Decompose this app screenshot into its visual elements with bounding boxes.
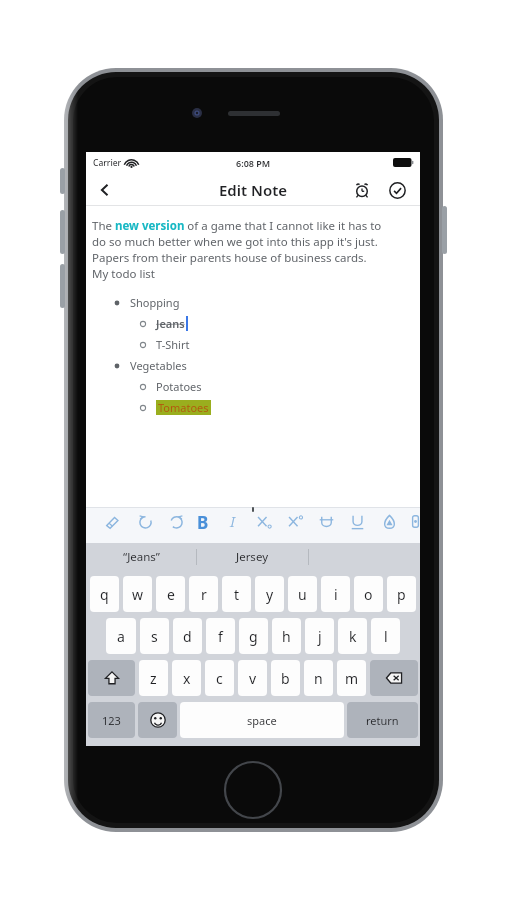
staticText: Edit Note <box>219 180 288 200</box>
button[interactable]: w <box>123 576 152 612</box>
button[interactable]: g <box>239 618 268 654</box>
button[interactable]: r <box>189 576 218 612</box>
button[interactable]: u <box>288 576 317 612</box>
button[interactable]: return <box>347 702 418 738</box>
staticText: z <box>150 669 157 688</box>
button[interactable]: d <box>173 618 202 654</box>
staticText: space <box>247 713 277 728</box>
staticText: f <box>218 627 223 646</box>
staticText: The new version of a game that I cannot … <box>92 218 382 234</box>
staticText: Shopping <box>130 295 180 310</box>
button[interactable]: y <box>255 576 284 612</box>
staticText: i <box>334 585 338 604</box>
staticText: 123 <box>102 713 121 728</box>
staticText: n <box>314 669 323 688</box>
staticText: return <box>366 713 399 728</box>
staticText: y <box>266 585 274 604</box>
button[interactable]: Subscript <box>254 511 274 531</box>
button[interactable]: Jersey <box>197 543 308 571</box>
button[interactable]: “Jeans” <box>86 543 196 571</box>
staticText: p <box>397 585 406 604</box>
staticText: r <box>201 585 207 604</box>
button[interactable]: Shopping <box>112 295 414 310</box>
button[interactable]: q <box>90 576 119 612</box>
button[interactable]: Text color <box>379 511 399 531</box>
staticText: x <box>183 669 191 688</box>
staticText: u <box>298 585 307 604</box>
staticText: Vegetables <box>130 358 187 373</box>
button[interactable]: v <box>238 660 267 696</box>
staticText: Tomatoes <box>158 400 209 415</box>
button[interactable]: i <box>321 576 350 612</box>
staticText: v <box>249 669 257 688</box>
button[interactable]: 123 <box>88 702 135 738</box>
button[interactable]: Emoji <box>138 702 177 738</box>
button[interactable]: Strikethrough <box>316 511 336 531</box>
button[interactable]: Redo <box>166 511 186 531</box>
button[interactable]: Vegetables <box>112 358 414 373</box>
button[interactable]: Backspace <box>370 660 418 696</box>
staticText: b <box>281 669 290 688</box>
button[interactable]: k <box>338 618 367 654</box>
staticText: k <box>349 627 357 646</box>
staticText: a <box>117 627 125 646</box>
button[interactable]: x <box>172 660 201 696</box>
button[interactable]: Potatoes <box>138 379 414 394</box>
staticText: Jeans <box>156 316 185 331</box>
staticText: c <box>216 669 223 688</box>
staticText: d <box>183 627 192 646</box>
button[interactable]: e <box>156 576 185 612</box>
staticText: o <box>364 585 373 604</box>
button[interactable]: space <box>180 702 344 738</box>
button[interactable]: s <box>140 618 169 654</box>
staticText: q <box>100 585 109 604</box>
staticText: I <box>230 511 236 531</box>
staticText: s <box>151 627 158 646</box>
button[interactable]: Shift <box>88 660 135 696</box>
button[interactable]: m <box>337 660 366 696</box>
button[interactable]: t <box>222 576 251 612</box>
button[interactable]: Underline <box>347 511 367 531</box>
button[interactable]: b <box>271 660 300 696</box>
button[interactable]: More <box>411 511 420 531</box>
button[interactable]: Superscript <box>285 511 305 531</box>
staticText: Carrier <box>93 157 122 169</box>
staticText: j <box>318 627 322 646</box>
staticText: Potatoes <box>156 379 202 394</box>
button[interactable]: o <box>354 576 383 612</box>
staticText: Jersey <box>236 549 269 565</box>
staticText: e <box>167 585 175 604</box>
staticText: 6:08 PM <box>236 157 271 169</box>
button[interactable]: a <box>106 618 136 654</box>
button[interactable]: Tomatoes <box>138 400 414 415</box>
staticText: T-Shirt <box>156 337 190 352</box>
staticText: My todo list <box>92 266 156 282</box>
button[interactable]: I <box>224 511 242 531</box>
staticText: Papers from their parents house of busin… <box>92 250 367 266</box>
staticText: t <box>234 585 240 604</box>
staticText: w <box>132 585 144 604</box>
staticText: g <box>249 627 258 646</box>
button[interactable]: B <box>194 511 212 531</box>
button[interactable]: j <box>305 618 334 654</box>
button[interactable]: Back <box>86 173 124 206</box>
button[interactable]: p <box>387 576 416 612</box>
button[interactable]: f <box>206 618 235 654</box>
button[interactable]: Jeans <box>138 316 414 331</box>
button[interactable]: Highlighter <box>102 511 122 531</box>
button[interactable]: c <box>205 660 234 696</box>
staticText: l <box>384 627 388 646</box>
button[interactable]: Undo <box>135 511 155 531</box>
staticText: do so much better when we got into this … <box>92 234 378 250</box>
button[interactable]: Done <box>383 176 411 204</box>
button[interactable]: T-Shirt <box>138 337 414 352</box>
staticText: B <box>197 511 209 531</box>
staticText: “Jeans” <box>123 549 160 565</box>
button[interactable]: h <box>272 618 301 654</box>
staticText: h <box>282 627 291 646</box>
button[interactable]: l <box>371 618 400 654</box>
button[interactable]: n <box>304 660 333 696</box>
button[interactable]: Set reminder <box>348 176 376 204</box>
button[interactable]: z <box>139 660 168 696</box>
